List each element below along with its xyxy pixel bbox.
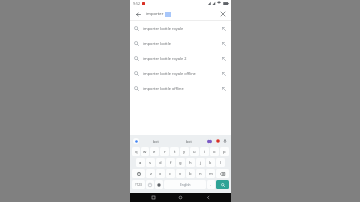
button[interactable]: Emoji keyboard	[146, 180, 154, 189]
staticText: bot	[186, 139, 192, 144]
button[interactable]: Shift	[132, 169, 145, 178]
button[interactable]: r	[160, 147, 169, 156]
staticText: importer bottle	[143, 41, 219, 46]
staticText: b	[189, 171, 192, 177]
button[interactable]: Search	[216, 180, 229, 189]
button[interactable]: Insert suggestion	[221, 26, 227, 32]
button[interactable]: Back	[130, 7, 231, 20]
button[interactable]: Recents	[149, 193, 158, 202]
button[interactable]: b	[186, 169, 195, 178]
staticText: s	[149, 160, 152, 166]
button[interactable]: y	[180, 147, 189, 156]
button[interactable]: Back	[204, 193, 213, 202]
staticText: importer bottle royale	[143, 26, 219, 31]
button[interactable]: h	[186, 158, 195, 167]
button[interactable]: Insert suggestion	[221, 41, 227, 47]
staticText: q	[135, 149, 138, 155]
button[interactable]: w	[141, 147, 149, 156]
button[interactable]: Insert suggestion	[221, 86, 227, 92]
staticText: z	[150, 171, 152, 177]
staticText: x	[159, 171, 162, 177]
staticText: English	[180, 183, 191, 187]
button[interactable]: Google	[133, 138, 139, 144]
button[interactable]: importer bottle royale	[130, 21, 231, 36]
staticText: l	[220, 160, 222, 166]
staticText: importer bottle offline	[143, 86, 219, 91]
staticText: e	[153, 149, 156, 155]
staticText: o	[213, 149, 216, 155]
button[interactable]: importer bottle	[130, 36, 231, 51]
button[interactable]: importer bottle royale offline	[130, 66, 231, 81]
staticText: ?123	[135, 183, 142, 187]
button[interactable]: Insert suggestion	[221, 56, 227, 62]
button[interactable]: importer bottle royale 2	[130, 51, 231, 66]
button[interactable]: m	[206, 169, 215, 178]
staticText: p	[223, 149, 226, 155]
button[interactable]: t	[170, 147, 179, 156]
button[interactable]: .	[207, 180, 215, 189]
button[interactable]: Space	[164, 180, 206, 189]
button[interactable]: x	[156, 169, 165, 178]
button[interactable]: l	[216, 158, 225, 167]
staticText: bot	[153, 139, 159, 144]
button[interactable]: Voice input	[221, 136, 228, 146]
staticText: a	[139, 160, 142, 166]
staticText: r	[164, 149, 166, 155]
staticText: v	[179, 171, 182, 177]
button[interactable]: Emoji	[214, 136, 221, 146]
staticText: w	[143, 149, 147, 155]
button[interactable]: Home	[176, 193, 185, 202]
staticText: importer	[146, 11, 164, 17]
staticText: h	[189, 160, 192, 166]
button[interactable]: Backspace	[216, 169, 229, 178]
button[interactable]: k	[206, 158, 215, 167]
staticText: g	[179, 160, 182, 166]
staticText: importer bottle royale offline	[143, 71, 219, 76]
staticText: f	[170, 160, 172, 166]
button[interactable]: importer bottle offline	[130, 81, 231, 96]
staticText: 9:52	[133, 1, 140, 6]
button[interactable]: Clear search	[219, 10, 227, 18]
staticText: t	[174, 149, 176, 155]
button[interactable]: f	[166, 158, 175, 167]
button[interactable]: p	[220, 147, 229, 156]
staticText: i	[204, 149, 206, 155]
staticText: importer bottle royale 2	[143, 56, 219, 61]
staticText: u	[193, 149, 196, 155]
button[interactable]: Settings	[155, 180, 163, 189]
button[interactable]: Back	[134, 10, 142, 18]
button[interactable]: ?123	[132, 180, 145, 189]
staticText: n	[199, 171, 202, 177]
button[interactable]: u	[190, 147, 199, 156]
staticText: c	[169, 171, 172, 177]
button[interactable]: a	[136, 158, 145, 167]
staticText: j	[200, 160, 202, 166]
button[interactable]: o	[210, 147, 219, 156]
button[interactable]: s	[146, 158, 155, 167]
staticText: k	[209, 160, 212, 166]
button[interactable]: i	[200, 147, 209, 156]
button[interactable]: c	[166, 169, 175, 178]
button[interactable]: g	[176, 158, 185, 167]
button[interactable]: j	[196, 158, 205, 167]
button[interactable]: d	[156, 158, 165, 167]
button[interactable]: q	[132, 147, 140, 156]
staticText: m	[209, 171, 213, 177]
button[interactable]: z	[146, 169, 155, 178]
button[interactable]: e	[150, 147, 159, 156]
staticText: d	[159, 160, 162, 166]
staticText: y	[183, 149, 186, 155]
button[interactable]: Insert suggestion	[221, 71, 227, 77]
button[interactable]: n	[196, 169, 205, 178]
staticText: .	[210, 182, 212, 187]
button[interactable]: Stickers	[205, 136, 214, 146]
button[interactable]: v	[176, 169, 185, 178]
